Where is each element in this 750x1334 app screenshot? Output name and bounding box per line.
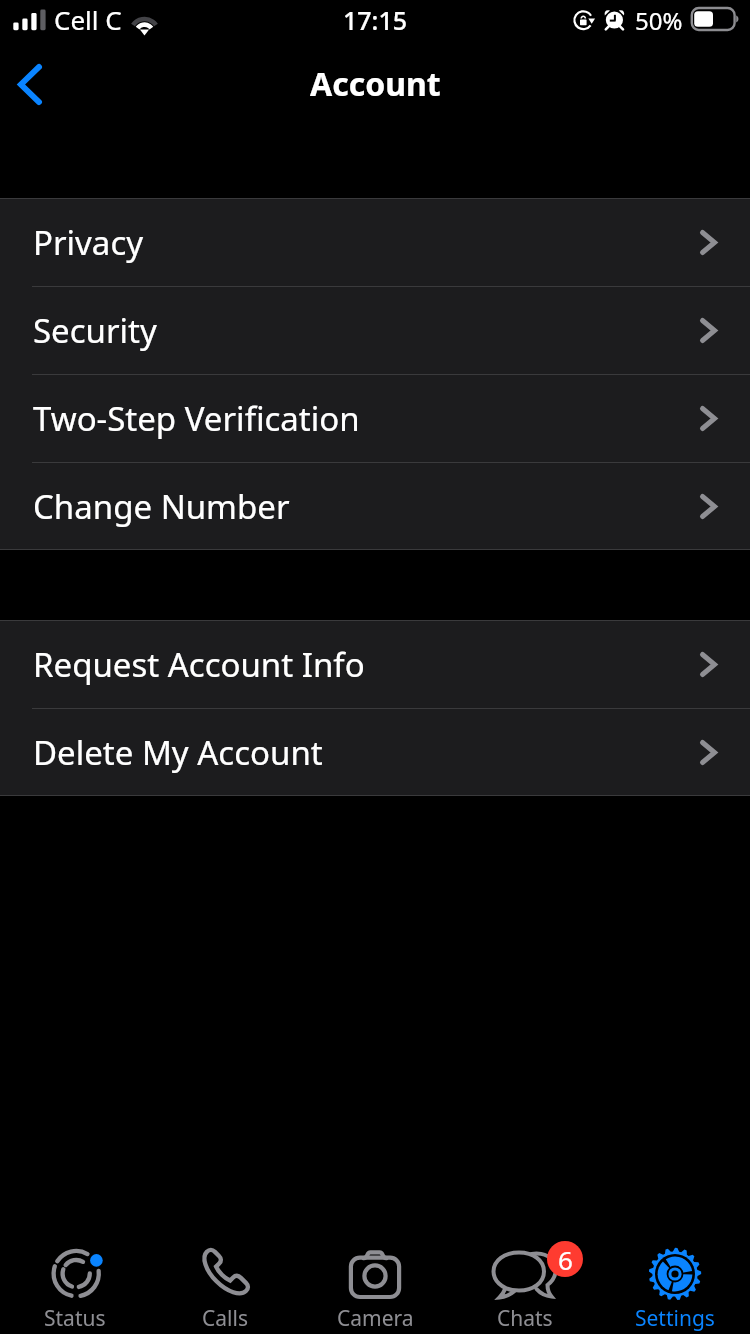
staticText: Status bbox=[44, 1304, 106, 1333]
staticText: Delete My Account bbox=[33, 730, 323, 775]
staticText: Change Number bbox=[33, 484, 290, 529]
staticText: Camera bbox=[337, 1304, 414, 1333]
staticText: Two-Step Verification bbox=[33, 396, 360, 441]
button[interactable]: Settings bbox=[600, 1236, 750, 1334]
button[interactable]: Status bbox=[0, 1236, 150, 1334]
button[interactable]: Chats bbox=[450, 1236, 600, 1334]
button[interactable]: Camera bbox=[300, 1236, 450, 1334]
staticText: Chats bbox=[497, 1304, 553, 1333]
staticText: Security bbox=[33, 308, 157, 353]
button[interactable]: Calls bbox=[150, 1236, 300, 1334]
staticText: 50% bbox=[635, 4, 683, 37]
button[interactable]: Two-Step Verification bbox=[0, 374, 750, 462]
staticText: 6 bbox=[558, 1242, 573, 1277]
staticText: Account bbox=[310, 62, 441, 106]
button[interactable]: Delete My Account bbox=[0, 708, 750, 796]
button[interactable]: Privacy bbox=[0, 198, 750, 286]
staticText: 17:15 bbox=[343, 3, 408, 37]
staticText: Settings bbox=[635, 1304, 715, 1333]
staticText: Cell C bbox=[54, 2, 122, 37]
button[interactable]: Change Number bbox=[0, 462, 750, 550]
staticText: Calls bbox=[202, 1304, 248, 1333]
staticText: Request Account Info bbox=[33, 642, 365, 687]
staticText: Privacy bbox=[33, 220, 144, 265]
button[interactable]: Request Account Info bbox=[0, 620, 750, 708]
button[interactable]: Security bbox=[0, 286, 750, 374]
button[interactable]: Back bbox=[2, 56, 58, 112]
